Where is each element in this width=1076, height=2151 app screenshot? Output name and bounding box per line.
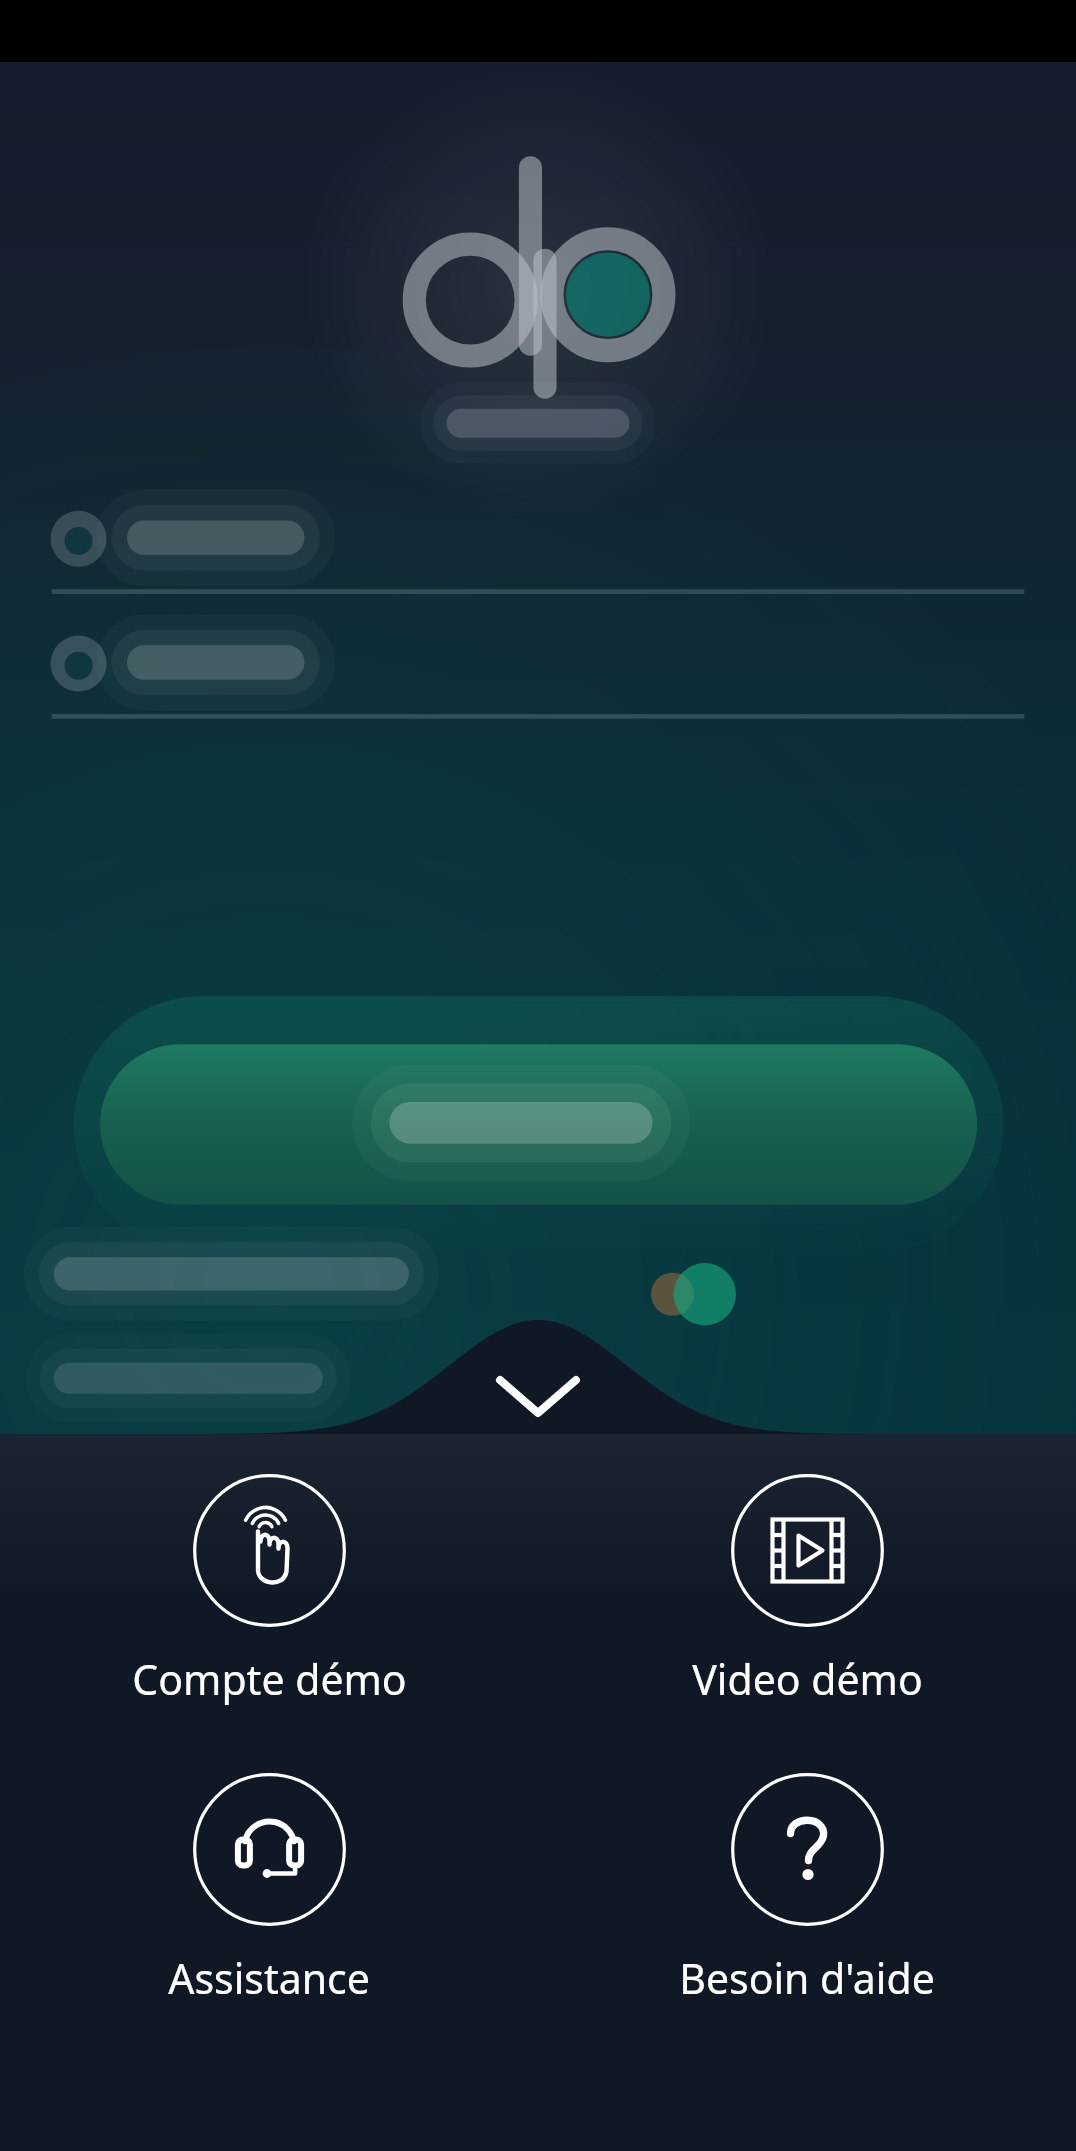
staticText: Video démo <box>692 1651 923 1707</box>
button[interactable]: Assistance <box>0 1773 538 2006</box>
button[interactable]: Besoin d'aide <box>538 1773 1076 2006</box>
button[interactable]: Compte démo <box>0 1474 538 1707</box>
button[interactable]: Réduire <box>423 1320 653 1438</box>
button[interactable]: Video démo <box>538 1474 1076 1707</box>
staticText: Assistance <box>168 1950 370 2006</box>
staticText: Compte démo <box>132 1651 407 1707</box>
staticText: Besoin d'aide <box>679 1950 935 2006</box>
